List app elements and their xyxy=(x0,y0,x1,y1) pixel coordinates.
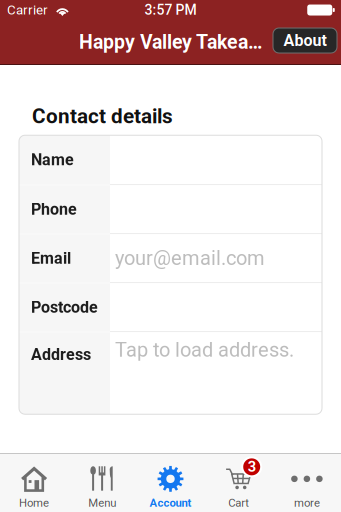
staticText: your@email.com xyxy=(115,246,265,270)
staticText: Name xyxy=(31,150,74,169)
staticText: Email xyxy=(31,249,71,268)
staticText: Cart xyxy=(228,496,249,510)
staticText: 3 xyxy=(248,458,256,475)
staticText: About xyxy=(283,31,326,50)
staticText: more xyxy=(294,496,320,510)
button[interactable]: more xyxy=(273,454,341,512)
staticText: Carrier xyxy=(7,2,48,18)
staticText: Postcode xyxy=(31,298,98,317)
staticText: Happy Valley Takea… xyxy=(79,31,262,53)
staticText: Home xyxy=(19,496,49,510)
button[interactable]: 3 xyxy=(205,454,273,512)
button[interactable]: Account xyxy=(136,454,205,512)
button[interactable]: Menu xyxy=(68,454,136,512)
staticText: Phone xyxy=(31,200,77,219)
staticText: Address xyxy=(31,345,91,364)
button[interactable]: About xyxy=(273,28,337,53)
staticText: Contact details xyxy=(32,104,173,128)
staticText: Tap to load address. xyxy=(115,338,294,362)
staticText: 3:57 PM xyxy=(144,2,196,18)
button[interactable]: Home xyxy=(0,454,68,512)
staticText: Account xyxy=(149,496,191,510)
staticText: Menu xyxy=(88,496,116,510)
